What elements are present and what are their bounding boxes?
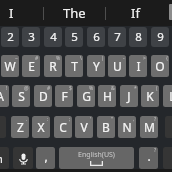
staticText: B bbox=[102, 119, 110, 135]
staticText: % bbox=[56, 55, 61, 62]
staticText: 6 bbox=[93, 29, 100, 45]
button[interactable]: H bbox=[98, 85, 116, 107]
staticText: $ bbox=[69, 85, 72, 92]
button[interactable]: B bbox=[97, 116, 115, 138]
staticText: . bbox=[26, 116, 28, 123]
button[interactable]: 4 bbox=[44, 27, 62, 47]
button[interactable]: N bbox=[118, 116, 136, 138]
staticText: K bbox=[146, 88, 154, 104]
button[interactable]: 9 bbox=[151, 27, 169, 47]
button[interactable]: S bbox=[12, 85, 30, 107]
staticText: , bbox=[133, 116, 135, 123]
staticText: ; bbox=[69, 116, 71, 123]
button[interactable]: J bbox=[120, 85, 138, 107]
staticText: W bbox=[4, 58, 16, 74]
staticText: > bbox=[143, 55, 146, 62]
staticText: V bbox=[80, 119, 88, 135]
staticText: | bbox=[101, 55, 104, 62]
staticText: G bbox=[82, 88, 91, 104]
staticText: A bbox=[0, 88, 4, 104]
staticText: % bbox=[89, 85, 94, 92]
staticText: " bbox=[111, 116, 114, 123]
staticText: @ bbox=[24, 85, 29, 92]
staticText: O bbox=[155, 58, 165, 74]
staticText: ' bbox=[90, 116, 92, 123]
button[interactable]: W bbox=[1, 55, 19, 77]
staticText: Z bbox=[17, 119, 24, 135]
button[interactable]: C bbox=[54, 116, 72, 138]
staticText: The bbox=[63, 4, 86, 22]
button[interactable]: G bbox=[77, 85, 95, 107]
staticText: ? bbox=[154, 116, 157, 123]
staticText: # bbox=[35, 55, 39, 62]
staticText: 9 bbox=[157, 29, 164, 45]
button[interactable]: 6 bbox=[87, 27, 105, 47]
staticText: X bbox=[37, 119, 45, 135]
staticText: H bbox=[103, 88, 112, 104]
staticText: I bbox=[9, 4, 14, 22]
staticText: J bbox=[127, 88, 131, 104]
button[interactable]: L bbox=[163, 85, 172, 107]
button[interactable]: 2 bbox=[1, 27, 19, 47]
staticText: \ bbox=[80, 55, 82, 62]
button[interactable]: , bbox=[36, 147, 55, 169]
staticText: ~ bbox=[15, 55, 18, 62]
button[interactable]: E bbox=[22, 55, 40, 77]
button[interactable]: K bbox=[141, 85, 159, 107]
staticText: * bbox=[134, 85, 137, 92]
button[interactable]: 7 bbox=[108, 27, 126, 47]
staticText: 3 bbox=[28, 29, 35, 45]
button[interactable]: 8 bbox=[129, 27, 147, 47]
staticText: D bbox=[39, 88, 48, 104]
button[interactable]: F bbox=[55, 85, 73, 107]
staticText: S bbox=[18, 88, 25, 104]
staticText: If bbox=[131, 4, 140, 22]
button[interactable]: 3 bbox=[22, 27, 40, 47]
button[interactable]: T bbox=[65, 55, 83, 77]
staticText: E bbox=[28, 58, 35, 74]
button[interactable]: 5 bbox=[65, 27, 83, 47]
staticText: Y bbox=[93, 58, 100, 74]
staticText: . bbox=[147, 148, 151, 164]
staticText: 5 bbox=[71, 29, 78, 45]
staticText: 4 bbox=[50, 29, 57, 45]
button[interactable]: Voice input bbox=[13, 147, 33, 169]
staticText: - bbox=[123, 55, 125, 62]
staticText: C bbox=[59, 119, 67, 135]
staticText: 2 bbox=[7, 29, 14, 45]
button[interactable]: U bbox=[108, 55, 126, 77]
button[interactable]: English(US) bbox=[59, 147, 134, 169]
button[interactable]: I bbox=[129, 55, 147, 77]
button[interactable]: The bbox=[43, 0, 105, 25]
staticText: & bbox=[111, 85, 115, 92]
staticText: F bbox=[61, 88, 68, 104]
button[interactable]: . bbox=[139, 147, 158, 169]
button[interactable]: Z bbox=[11, 116, 29, 138]
staticText: , bbox=[44, 148, 48, 164]
staticText: T bbox=[71, 58, 78, 74]
button[interactable]: Y bbox=[87, 55, 105, 77]
button[interactable]: X bbox=[32, 116, 50, 138]
button[interactable]: D bbox=[34, 85, 52, 107]
button[interactable]: If bbox=[104, 0, 166, 25]
staticText: R bbox=[49, 58, 57, 74]
staticText: I bbox=[136, 58, 141, 74]
button[interactable]: I bbox=[0, 0, 42, 25]
button[interactable]: A bbox=[0, 85, 9, 107]
staticText: English(US) bbox=[78, 150, 115, 160]
button[interactable]: V bbox=[75, 116, 93, 138]
button[interactable]: n bbox=[0, 147, 9, 169]
button[interactable]: O bbox=[151, 55, 169, 77]
staticText: U bbox=[113, 58, 122, 74]
staticText: { bbox=[166, 55, 168, 62]
staticText: 8 bbox=[135, 29, 142, 45]
staticText: 7 bbox=[114, 29, 121, 45]
staticText: ? bbox=[154, 147, 157, 154]
staticText: # bbox=[47, 85, 51, 92]
staticText: ( bbox=[156, 85, 158, 92]
button[interactable]: R bbox=[44, 55, 62, 77]
button[interactable]: M bbox=[140, 116, 158, 138]
